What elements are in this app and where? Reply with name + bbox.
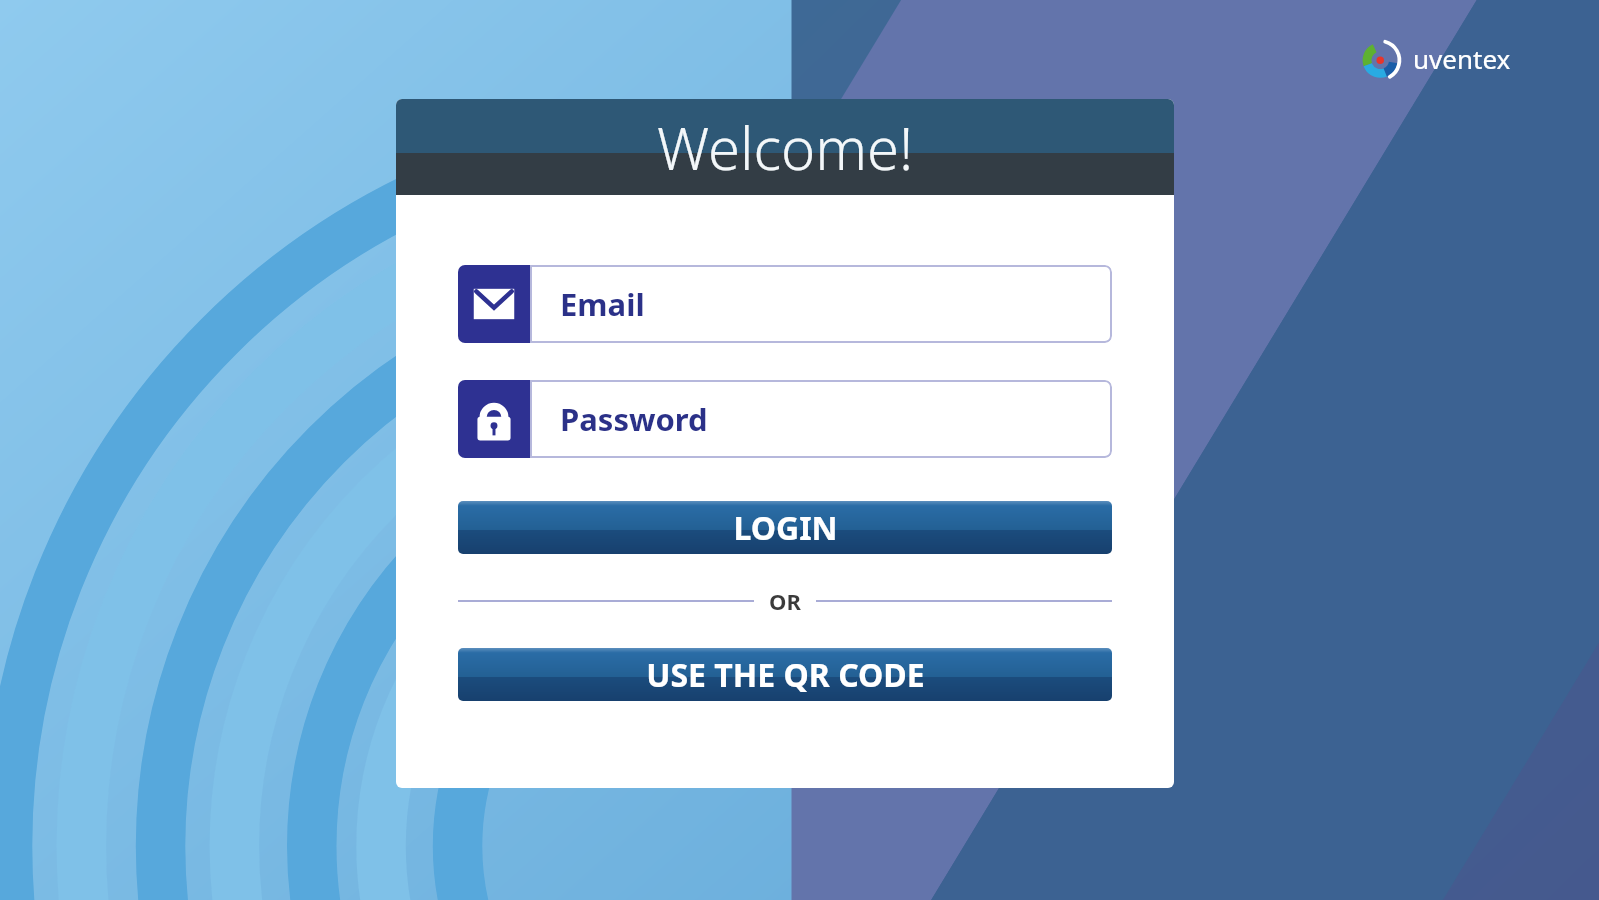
button[interactable]: Password field <box>458 380 1112 458</box>
staticText: Password <box>560 398 708 440</box>
staticText: USE THE QR CODE <box>646 653 925 697</box>
staticText: uventex <box>1413 41 1511 76</box>
button[interactable]: uventex logo <box>1360 36 1511 80</box>
staticText: Email <box>560 283 645 325</box>
button[interactable]: Email address field <box>458 265 1112 343</box>
button[interactable]: LOGIN <box>458 501 1112 554</box>
staticText: OR <box>769 586 801 616</box>
staticText: LOGIN <box>733 506 838 550</box>
staticText: Welcome! <box>657 108 914 187</box>
button[interactable]: USE THE QR CODE <box>458 648 1112 701</box>
